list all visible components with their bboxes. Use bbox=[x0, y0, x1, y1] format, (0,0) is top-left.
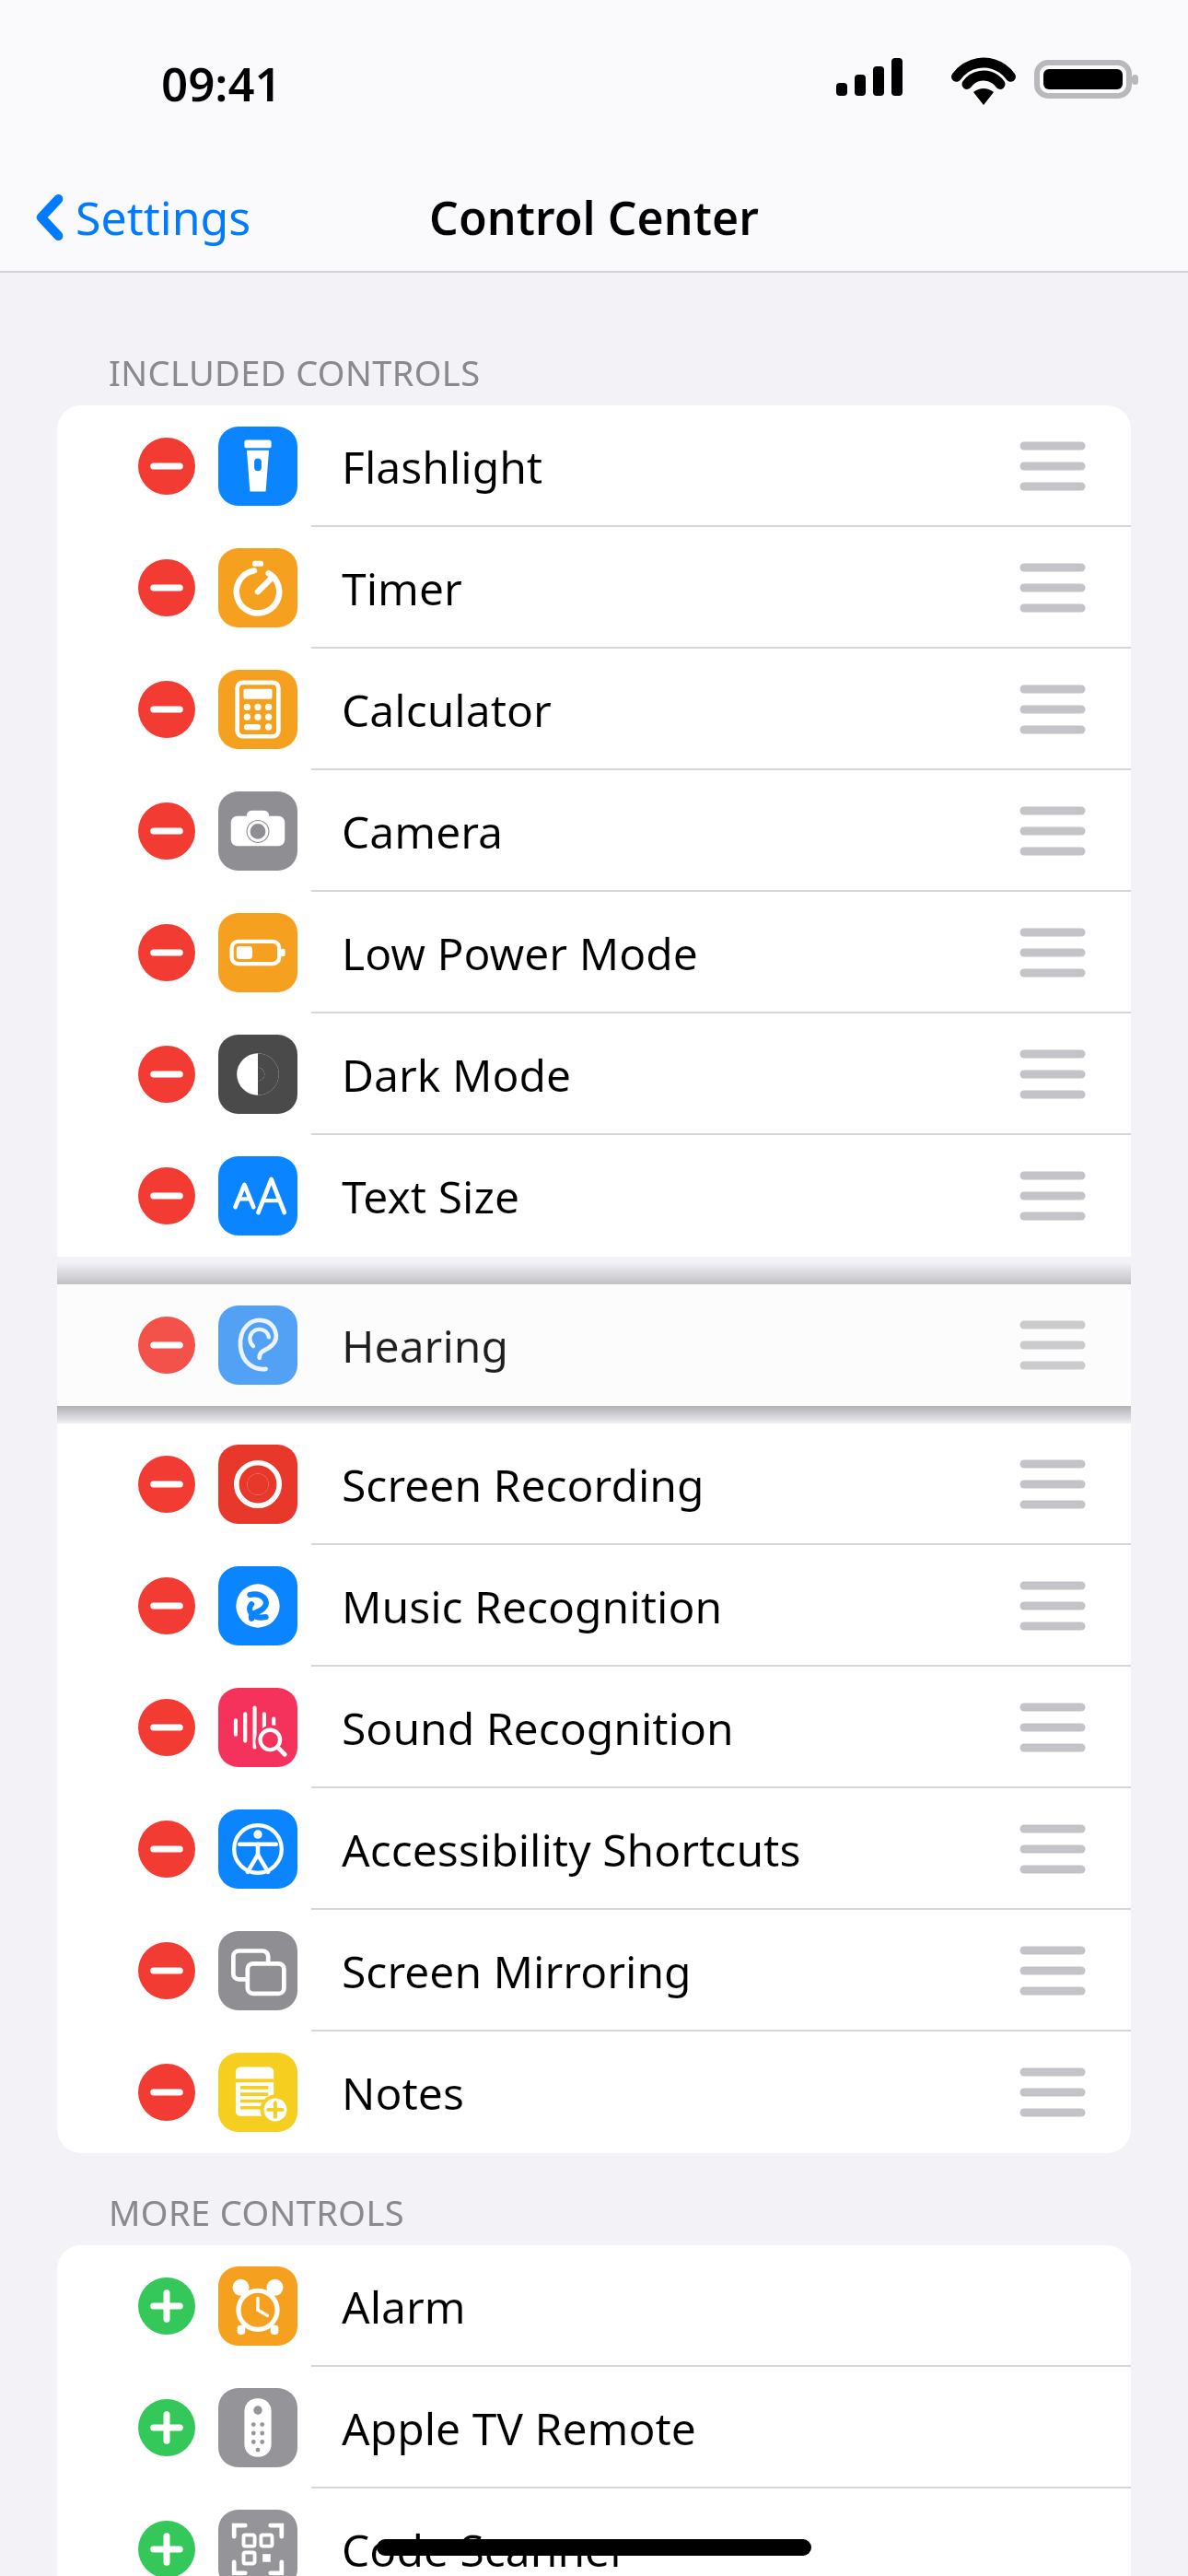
staticText: Screen Recording bbox=[342, 1455, 705, 1515]
button[interactable]: Reorder Music Recognition bbox=[1011, 1569, 1094, 1643]
button[interactable]: Remove Music Recognition bbox=[57, 1545, 1131, 1667]
button[interactable]: Remove Timer bbox=[138, 559, 195, 616]
button[interactable]: Remove Camera bbox=[57, 770, 1131, 892]
staticText: Timer bbox=[342, 558, 462, 618]
staticText: Hearing bbox=[342, 1316, 508, 1376]
button[interactable]: Reorder Sound Recognition bbox=[1011, 1691, 1094, 1764]
button[interactable]: Settings bbox=[29, 175, 259, 260]
staticText: 09:41 bbox=[161, 51, 282, 114]
button[interactable]: Remove Hearing bbox=[138, 1317, 195, 1374]
staticText: Text Size bbox=[342, 1166, 520, 1226]
button[interactable]: Remove Screen Recording bbox=[57, 1423, 1131, 1545]
button[interactable]: Remove Text Size bbox=[57, 1135, 1131, 1257]
staticText: Alarm bbox=[342, 2277, 466, 2336]
staticText: Accessibility Shortcuts bbox=[342, 1820, 801, 1879]
button[interactable]: Add Apple TV Remote bbox=[138, 2399, 195, 2456]
button[interactable]: Remove Sound Recognition bbox=[138, 1699, 195, 1756]
button[interactable]: Reorder Camera bbox=[1011, 794, 1094, 868]
button[interactable]: Remove Accessibility Shortcuts bbox=[138, 1821, 195, 1878]
button[interactable]: Remove Camera bbox=[138, 802, 195, 860]
staticText: Notes bbox=[342, 2063, 464, 2123]
staticText: Apple TV Remote bbox=[342, 2398, 696, 2458]
staticText: Low Power Mode bbox=[342, 923, 698, 983]
button[interactable]: Remove Accessibility Shortcuts bbox=[57, 1788, 1131, 1910]
button[interactable]: Reorder Dark Mode bbox=[1011, 1037, 1094, 1111]
staticText: Music Recognition bbox=[342, 1576, 723, 1636]
button[interactable]: Reorder Accessibility Shortcuts bbox=[1011, 1812, 1094, 1886]
button[interactable]: Remove Screen Recording bbox=[138, 1456, 195, 1513]
button[interactable]: Add Code Scanner bbox=[138, 2521, 195, 2576]
button[interactable]: Remove Timer bbox=[57, 527, 1131, 649]
staticText: MORE CONTROLS bbox=[109, 2188, 405, 2236]
button[interactable]: Remove Sound Recognition bbox=[57, 1667, 1131, 1788]
button[interactable]: Reorder Notes bbox=[1011, 2055, 1094, 2129]
button[interactable]: Remove Notes bbox=[138, 2064, 195, 2121]
button[interactable]: Reorder Screen Recording bbox=[1011, 1447, 1094, 1521]
button[interactable]: Remove Calculator bbox=[57, 649, 1131, 770]
button[interactable]: Reorder Timer bbox=[1011, 551, 1094, 625]
button[interactable]: Remove Dark Mode bbox=[57, 1013, 1131, 1135]
button[interactable]: Remove Calculator bbox=[138, 681, 195, 738]
button[interactable]: Remove Music Recognition bbox=[138, 1577, 195, 1634]
button[interactable]: Remove Dark Mode bbox=[138, 1046, 195, 1103]
button[interactable]: Add Alarm bbox=[138, 2277, 195, 2335]
button[interactable]: Reorder Low Power Mode bbox=[1011, 916, 1094, 989]
button[interactable]: Remove Low Power Mode bbox=[57, 892, 1131, 1013]
button[interactable]: Remove Notes bbox=[57, 2032, 1131, 2153]
button[interactable]: Reorder Flashlight bbox=[1011, 429, 1094, 503]
staticText: Flashlight bbox=[342, 437, 543, 497]
button[interactable]: Remove Screen Mirroring bbox=[138, 1942, 195, 1999]
staticText: Control Center bbox=[429, 186, 759, 249]
button[interactable]: Add Alarm bbox=[57, 2245, 1131, 2367]
button[interactable]: Remove Text Size bbox=[138, 1167, 195, 1224]
button[interactable]: Reorder Text Size bbox=[1011, 1159, 1094, 1233]
button[interactable]: Remove Hearing bbox=[57, 1284, 1131, 1406]
button[interactable]: Remove Screen Mirroring bbox=[57, 1910, 1131, 2032]
staticText: Dark Mode bbox=[342, 1045, 572, 1105]
staticText: Camera bbox=[342, 802, 504, 861]
button[interactable]: Remove Flashlight bbox=[138, 438, 195, 495]
staticText: Code Scanner bbox=[342, 2520, 628, 2576]
button[interactable]: Reorder Hearing bbox=[1011, 1308, 1094, 1382]
button[interactable]: Add Code Scanner bbox=[57, 2488, 1131, 2576]
button[interactable]: Remove Low Power Mode bbox=[138, 924, 195, 981]
button[interactable]: Add Apple TV Remote bbox=[57, 2367, 1131, 2488]
button[interactable]: Reorder Calculator bbox=[1011, 673, 1094, 746]
button[interactable]: Remove Flashlight bbox=[57, 405, 1131, 527]
staticText: Calculator bbox=[342, 680, 552, 740]
staticText: Sound Recognition bbox=[342, 1698, 734, 1758]
button[interactable]: Reorder Screen Mirroring bbox=[1011, 1934, 1094, 2008]
staticText: Settings bbox=[76, 186, 251, 249]
staticText: INCLUDED CONTROLS bbox=[109, 348, 481, 396]
staticText: Screen Mirroring bbox=[342, 1941, 692, 2001]
